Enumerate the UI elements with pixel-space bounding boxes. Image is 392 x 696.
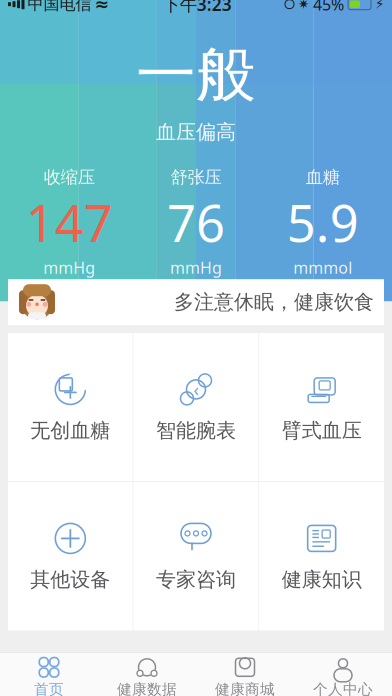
staticText: 血糖 <box>306 166 340 188</box>
staticText: 45% <box>313 0 344 15</box>
staticText: 健康商城 <box>215 680 275 696</box>
staticText: 首页 <box>34 680 64 696</box>
staticText: 收缩压 <box>44 166 95 188</box>
button[interactable]: 健康数据 <box>98 653 196 696</box>
staticText: mmmol <box>293 257 352 278</box>
staticText: 无创血糖 <box>30 418 110 443</box>
button[interactable]: 其他设备 <box>8 482 133 630</box>
staticText: 中国电信 <box>27 0 91 14</box>
staticText: 147 <box>26 189 113 256</box>
staticText: 5.9 <box>287 189 359 256</box>
staticText: mmHg <box>43 257 95 278</box>
staticText: 一般 <box>136 38 256 112</box>
staticText: 多注意休眠，健康饮食 <box>174 290 374 314</box>
staticText: 76 <box>167 189 225 256</box>
staticText: ✷ <box>298 0 309 12</box>
button[interactable]: 首页 <box>0 653 98 696</box>
staticText: 舒张压 <box>170 166 221 188</box>
staticText: ≈ <box>94 0 109 14</box>
button[interactable]: 无创血糖 <box>8 333 133 481</box>
staticText: ⚡︎ <box>375 0 384 12</box>
staticText: 臂式血压 <box>282 418 362 443</box>
staticText: 健康知识 <box>282 567 362 592</box>
button[interactable]: 专家咨询 <box>134 482 258 630</box>
button[interactable]: 多注意休眠，健康饮食 <box>8 279 384 325</box>
button[interactable]: 个人中心 <box>294 653 392 696</box>
button[interactable]: 健康知识 <box>259 482 384 630</box>
staticText: 个人中心 <box>313 680 373 696</box>
staticText: ‹ <box>193 378 198 401</box>
staticText: 智能腕表 <box>156 418 236 443</box>
staticText: 血压偏高 <box>156 120 236 144</box>
staticText: 专家咨询 <box>156 567 236 592</box>
staticText: 健康数据 <box>117 680 177 696</box>
staticText: 其他设备 <box>30 567 110 592</box>
button[interactable]: ‹ <box>134 333 258 481</box>
button[interactable]: 健康商城 <box>196 653 294 696</box>
staticText: mmHg <box>170 257 222 278</box>
button[interactable]: 臂式血压 <box>259 333 384 481</box>
staticText: 下午3:23 <box>163 0 232 16</box>
